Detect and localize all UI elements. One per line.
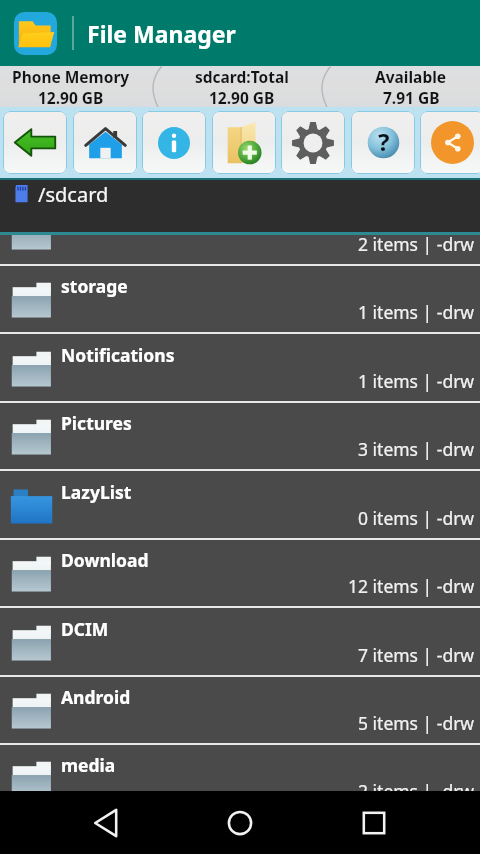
staticText: 12.90 GB: [38, 87, 104, 107]
button[interactable]: Download: [0, 540, 480, 608]
button[interactable]: Back: [78, 795, 134, 851]
staticText: Pictures: [61, 411, 132, 435]
staticText: 3 items | -drw: [358, 437, 475, 461]
staticText: Available: [375, 66, 447, 87]
staticText: 7.91 GB: [383, 87, 440, 107]
staticText: media: [61, 753, 116, 777]
button[interactable]: Back: [3, 111, 67, 174]
button[interactable]: /sdcard: [0, 178, 480, 235]
button[interactable]: Pictures: [0, 403, 480, 471]
button[interactable]: Notifications: [0, 335, 480, 403]
button[interactable]: New folder: [212, 111, 276, 174]
button[interactable]: sdcard0: [0, 235, 480, 266]
button[interactable]: Help: [351, 111, 415, 174]
button[interactable]: storage: [0, 266, 480, 334]
button[interactable]: sdcard:Total: [142, 66, 342, 107]
staticText: Phone Memory: [12, 66, 130, 87]
staticText: DCIM: [61, 617, 109, 641]
button[interactable]: Home: [73, 111, 137, 174]
staticText: Android: [61, 685, 131, 709]
staticText: File Manager: [87, 18, 236, 49]
button[interactable]: Settings: [281, 111, 345, 174]
staticText: sdcard:Total: [195, 66, 289, 87]
staticText: Download: [61, 548, 149, 572]
staticText: LazyList: [61, 480, 132, 504]
button[interactable]: Android: [0, 677, 480, 745]
staticText: 0 items | -drw: [358, 506, 475, 530]
staticText: 1 items | -drw: [358, 300, 475, 324]
button[interactable]: LazyList: [0, 472, 480, 540]
staticText: 7 items | -drw: [358, 643, 475, 667]
staticText: 1 items | -drw: [358, 369, 475, 393]
staticText: /sdcard: [38, 181, 109, 208]
staticText: 2 items | -drw: [358, 235, 475, 256]
button[interactable]: Home: [212, 795, 268, 851]
button[interactable]: Recents: [346, 795, 402, 851]
button[interactable]: Info: [142, 111, 206, 174]
button[interactable]: Share: [420, 111, 480, 174]
button[interactable]: media: [0, 745, 480, 791]
staticText: 12.90 GB: [209, 87, 275, 107]
staticText: storage: [61, 274, 128, 298]
button[interactable]: Available: [342, 66, 480, 107]
staticText: ?: [378, 125, 390, 158]
button[interactable]: DCIM: [0, 609, 480, 677]
staticText: 5 items | -drw: [358, 711, 475, 735]
staticText: Notifications: [61, 343, 175, 367]
button[interactable]: Phone Memory: [0, 66, 142, 107]
staticText: 2 items | -drw: [358, 779, 475, 791]
staticText: 12 items | -drw: [348, 574, 475, 598]
